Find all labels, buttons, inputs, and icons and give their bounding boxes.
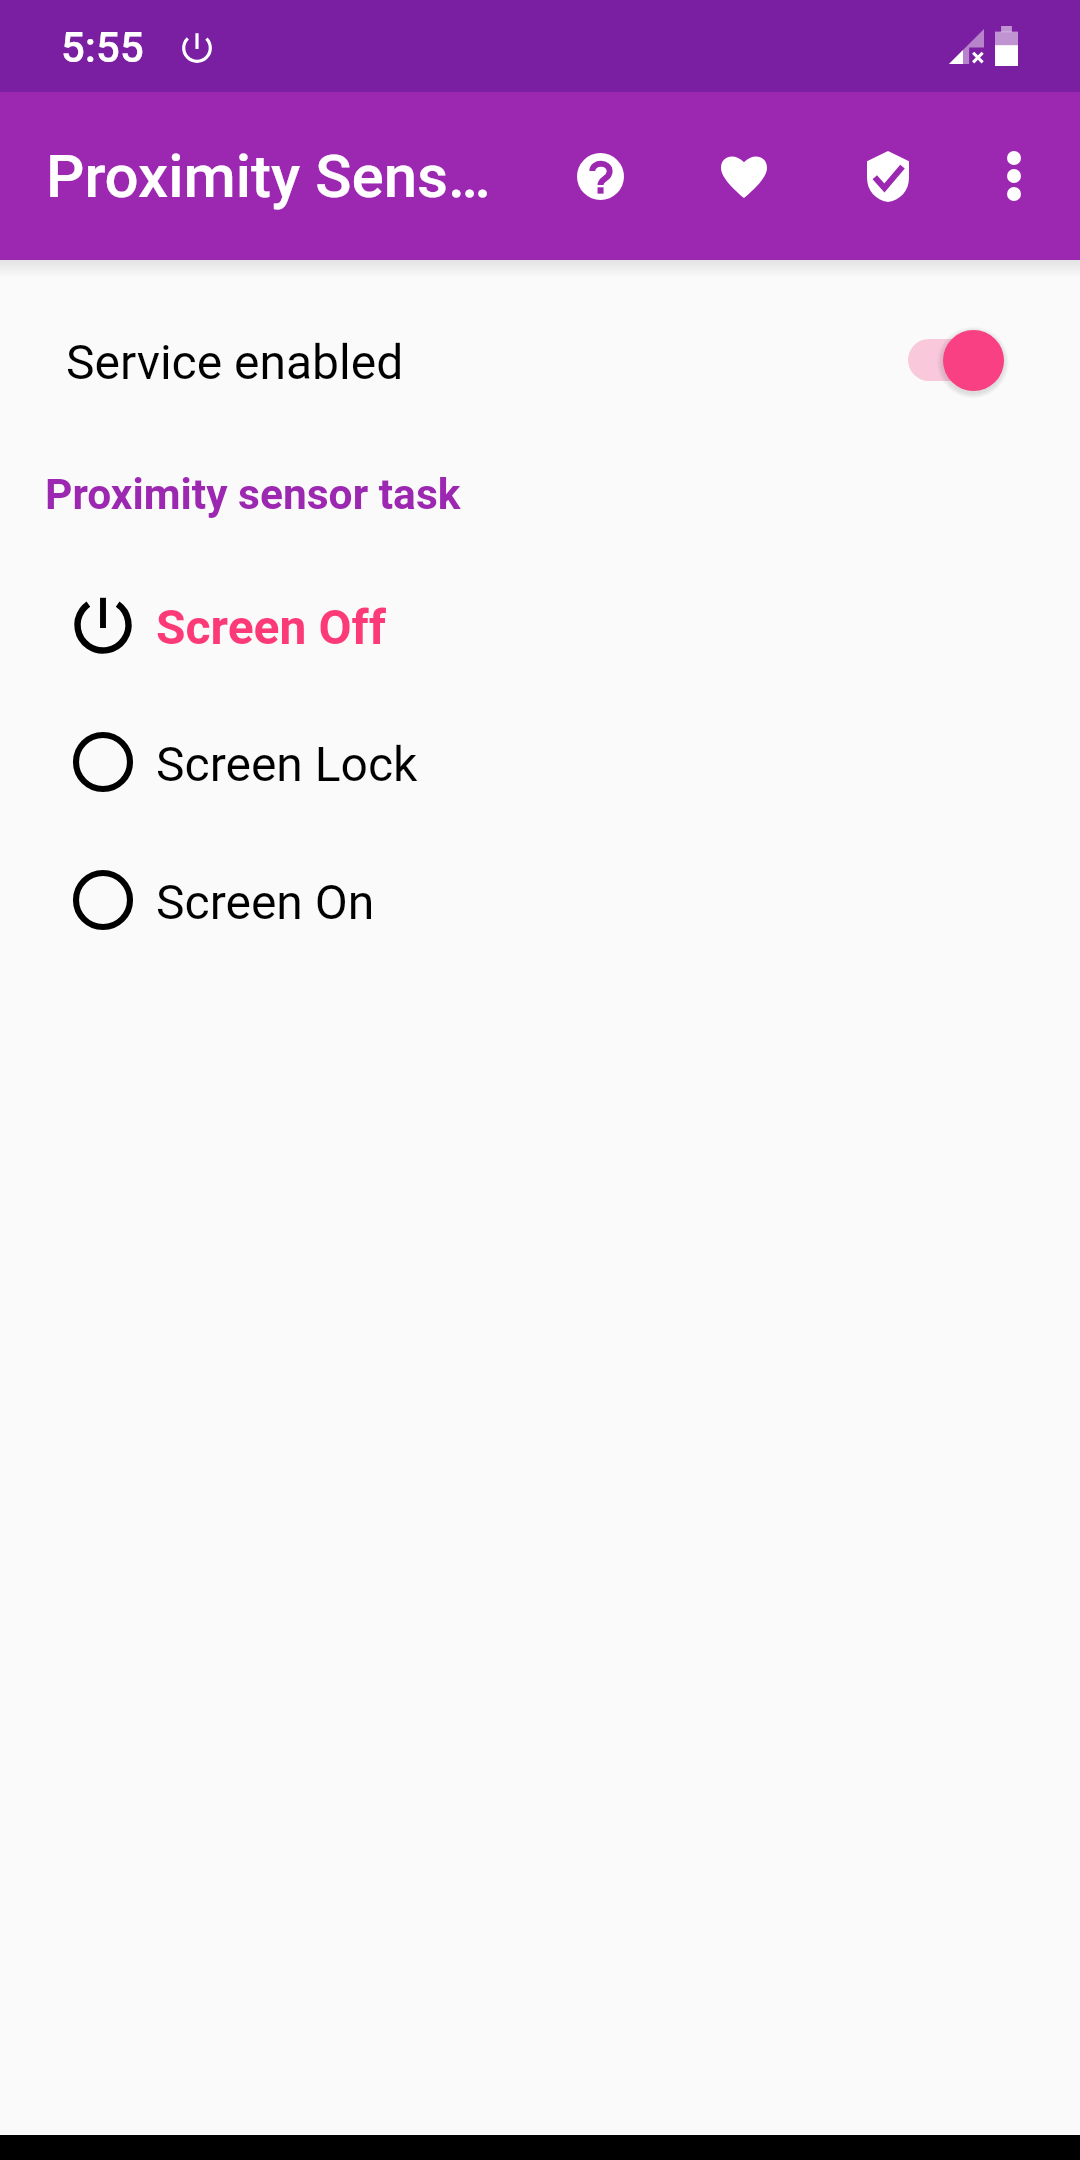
button[interactable]: More options: [942, 92, 1080, 260]
button[interactable]: Help: [528, 92, 672, 260]
staticText: Proximity sensor task: [45, 470, 461, 520]
staticText: Screen Lock: [156, 736, 418, 792]
staticText: 5:55: [61, 23, 144, 72]
button[interactable]: Service enabled: [0, 275, 1080, 445]
button[interactable]: Screen On: [0, 831, 1080, 969]
button[interactable]: Verified: [816, 92, 960, 260]
button[interactable]: Screen Off: [0, 556, 1080, 694]
staticText: Service enabled: [66, 334, 404, 390]
button[interactable]: Favorite: [672, 92, 816, 260]
staticText: Screen Off: [156, 599, 386, 655]
button[interactable]: Screen Lock: [0, 693, 1080, 831]
staticText: Proximity Sens…: [46, 141, 491, 211]
staticText: Screen On: [156, 874, 375, 930]
